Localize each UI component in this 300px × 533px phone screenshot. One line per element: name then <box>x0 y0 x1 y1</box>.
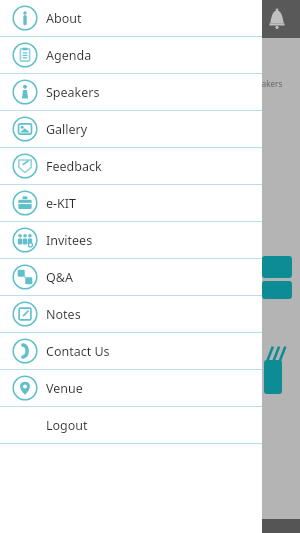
staticText: Q&A <box>46 269 73 286</box>
button[interactable]: e-KIT <box>0 185 262 222</box>
staticText: Speakers <box>46 84 100 101</box>
staticText: Venue <box>46 380 83 397</box>
staticText: Logout <box>46 417 88 434</box>
staticText: e-KIT <box>46 195 77 212</box>
button[interactable]: About <box>0 0 262 37</box>
button[interactable]: Logout <box>0 407 262 444</box>
staticText: Feedback <box>46 158 102 175</box>
staticText: Agenda <box>46 47 92 64</box>
button[interactable]: Notifications <box>264 6 290 32</box>
button[interactable]: Notes <box>0 296 262 333</box>
button[interactable]: Agenda <box>0 37 262 74</box>
button[interactable]: Q&A <box>0 259 262 296</box>
button[interactable]: Speakers <box>0 74 262 111</box>
staticText: Gallery <box>46 121 88 138</box>
button[interactable]: Invitees <box>0 222 262 259</box>
button[interactable]: Contact Us <box>0 333 262 370</box>
staticText: Notes <box>46 306 81 323</box>
button[interactable]: Feedback <box>0 148 262 185</box>
staticText: Invitees <box>46 232 93 249</box>
staticText: Speakers <box>248 78 283 89</box>
staticText: Contact Us <box>46 343 110 360</box>
button[interactable]: Venue <box>0 370 262 407</box>
staticText: About <box>46 10 82 27</box>
button[interactable]: Gallery <box>0 111 262 148</box>
